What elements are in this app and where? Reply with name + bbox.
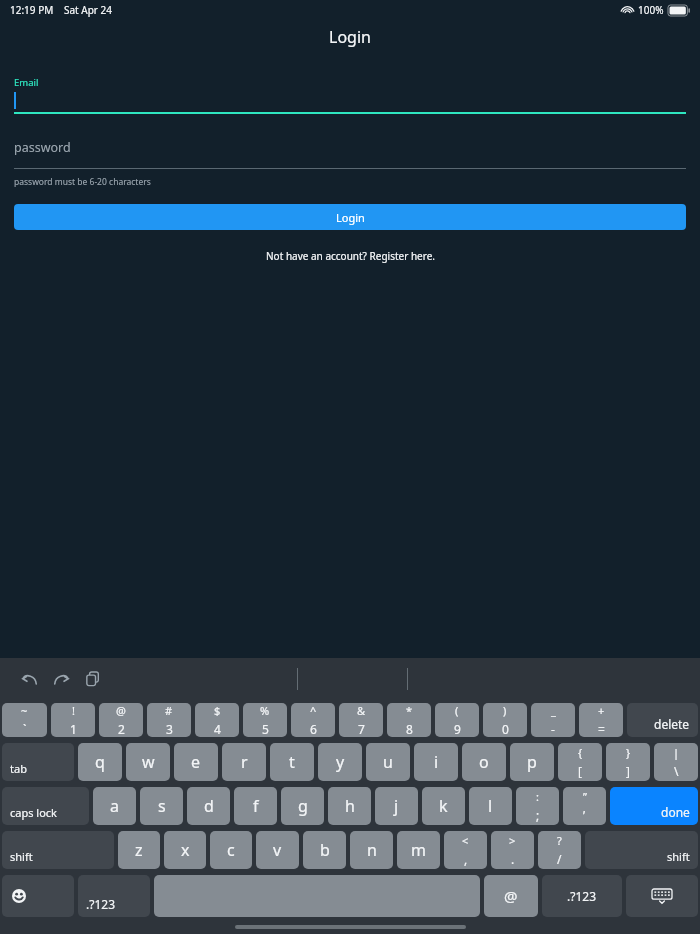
- button[interactable]: k: [422, 787, 465, 825]
- button[interactable]: &: [339, 703, 383, 737]
- staticText: 2: [118, 721, 125, 737]
- staticText: >: [509, 833, 516, 848]
- button[interactable]: {: [558, 743, 602, 781]
- button[interactable]: l: [469, 787, 512, 825]
- staticText: _: [551, 703, 556, 718]
- button[interactable]: h: [328, 787, 371, 825]
- button[interactable]: m: [397, 831, 440, 869]
- button[interactable]: @: [484, 875, 538, 917]
- staticText: }: [626, 745, 631, 760]
- button[interactable]: Login: [14, 204, 686, 230]
- staticText: password: [14, 139, 71, 156]
- button[interactable]: [2, 875, 74, 917]
- staticText: l: [488, 795, 493, 817]
- button[interactable]: Not have an account? Register here.: [266, 249, 435, 263]
- button[interactable]: }: [606, 743, 650, 781]
- button[interactable]: @: [99, 703, 143, 737]
- button[interactable]: a: [93, 787, 136, 825]
- staticText: b: [320, 839, 330, 861]
- button[interactable]: v: [256, 831, 299, 869]
- button[interactable]: ~: [2, 703, 47, 737]
- button[interactable]: q: [78, 743, 122, 781]
- button[interactable]: ^: [291, 703, 335, 737]
- button[interactable]: r: [222, 743, 266, 781]
- button[interactable]: c: [210, 831, 252, 869]
- button[interactable]: :: [516, 787, 559, 825]
- staticText: 1: [70, 721, 77, 737]
- button[interactable]: e: [174, 743, 218, 781]
- staticText: h: [345, 795, 355, 817]
- staticText: 12:19 PM: [10, 3, 54, 17]
- button[interactable]: >: [491, 831, 534, 869]
- staticText: @: [116, 703, 126, 718]
- staticText: n: [367, 839, 377, 861]
- button[interactable]: #: [147, 703, 191, 737]
- staticText: /: [557, 851, 562, 867]
- staticText: j: [394, 795, 399, 817]
- button[interactable]: done: [610, 787, 698, 825]
- button[interactable]: n: [350, 831, 393, 869]
- staticText: i: [434, 751, 439, 773]
- button[interactable]: f: [234, 787, 277, 825]
- staticText: .?123: [86, 896, 116, 912]
- staticText: 9: [454, 721, 461, 737]
- button[interactable]: .?123: [542, 875, 622, 917]
- staticText: :: [536, 789, 539, 804]
- staticText: z: [135, 839, 143, 861]
- button[interactable]: !: [51, 703, 95, 737]
- button[interactable]: s: [140, 787, 183, 825]
- staticText: s: [158, 795, 166, 817]
- staticText: ;: [536, 807, 540, 823]
- button[interactable]: <: [444, 831, 487, 869]
- button[interactable]: Paste: [78, 664, 108, 694]
- button[interactable]: ”: [563, 787, 606, 825]
- button[interactable]: ): [483, 703, 527, 737]
- button[interactable]: (: [435, 703, 479, 737]
- staticText: 0: [502, 721, 509, 737]
- button[interactable]: d: [187, 787, 230, 825]
- button[interactable]: u: [366, 743, 410, 781]
- button[interactable]: p: [510, 743, 554, 781]
- button[interactable]: $: [195, 703, 239, 737]
- button[interactable]: t: [270, 743, 314, 781]
- staticText: \: [674, 763, 679, 779]
- staticText: Email: [14, 76, 39, 89]
- button[interactable]: Undo: [14, 664, 44, 694]
- staticText: ): [503, 703, 507, 718]
- button[interactable]: g: [281, 787, 324, 825]
- staticText: y: [336, 751, 345, 773]
- staticText: ”: [583, 789, 587, 804]
- button[interactable]: %: [243, 703, 287, 737]
- button[interactable]: y: [318, 743, 362, 781]
- staticText: 5: [262, 721, 269, 737]
- button[interactable]: *: [387, 703, 431, 737]
- button[interactable]: |: [654, 743, 698, 781]
- button[interactable]: [626, 875, 698, 917]
- staticText: m: [411, 839, 426, 861]
- button[interactable]: [154, 875, 480, 917]
- staticText: Sat Apr 24: [64, 3, 113, 17]
- button[interactable]: tab: [2, 743, 74, 781]
- button[interactable]: _: [531, 703, 575, 737]
- staticText: #: [165, 703, 173, 718]
- button[interactable]: b: [303, 831, 346, 869]
- button[interactable]: delete: [627, 703, 698, 737]
- staticText: <: [462, 833, 469, 848]
- button[interactable]: w: [126, 743, 170, 781]
- button[interactable]: j: [375, 787, 418, 825]
- staticText: done: [661, 804, 690, 820]
- button[interactable]: ?: [538, 831, 581, 869]
- staticText: q: [95, 751, 105, 773]
- button[interactable]: i: [414, 743, 458, 781]
- button[interactable]: .?123: [78, 875, 150, 917]
- button[interactable]: shift: [585, 831, 698, 869]
- button[interactable]: +: [579, 703, 623, 737]
- staticText: +: [598, 703, 605, 718]
- button[interactable]: caps lock: [2, 787, 89, 825]
- staticText: (: [455, 703, 459, 718]
- button[interactable]: z: [118, 831, 160, 869]
- button[interactable]: shift: [2, 831, 114, 869]
- button[interactable]: Redo: [46, 664, 76, 694]
- button[interactable]: x: [164, 831, 206, 869]
- button[interactable]: o: [462, 743, 506, 781]
